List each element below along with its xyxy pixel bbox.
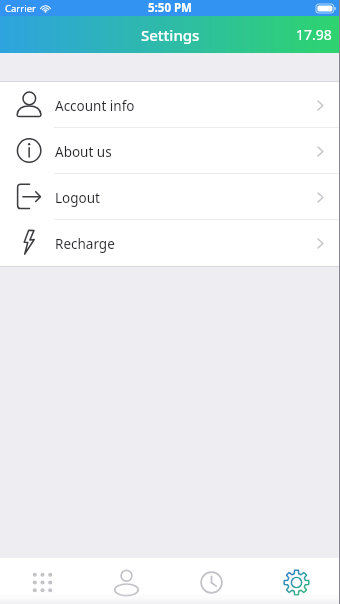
- staticText: Settings: [141, 25, 200, 45]
- staticText: 5:50 PM: [148, 0, 192, 16]
- button[interactable]: Profile: [84, 558, 169, 604]
- button[interactable]: Apps: [0, 558, 84, 604]
- staticText: 17.98: [296, 25, 332, 44]
- button[interactable]: Logout: [0, 174, 340, 220]
- staticText: Account info: [55, 97, 135, 115]
- button[interactable]: History: [169, 558, 254, 604]
- staticText: Recharge: [55, 235, 115, 253]
- button[interactable]: About us: [0, 128, 340, 174]
- button[interactable]: Account info: [0, 82, 340, 128]
- button[interactable]: Settings: [254, 558, 339, 604]
- staticText: Logout: [55, 189, 100, 207]
- button[interactable]: Recharge: [0, 220, 340, 266]
- staticText: About us: [55, 143, 112, 161]
- staticText: Carrier: [5, 2, 36, 15]
